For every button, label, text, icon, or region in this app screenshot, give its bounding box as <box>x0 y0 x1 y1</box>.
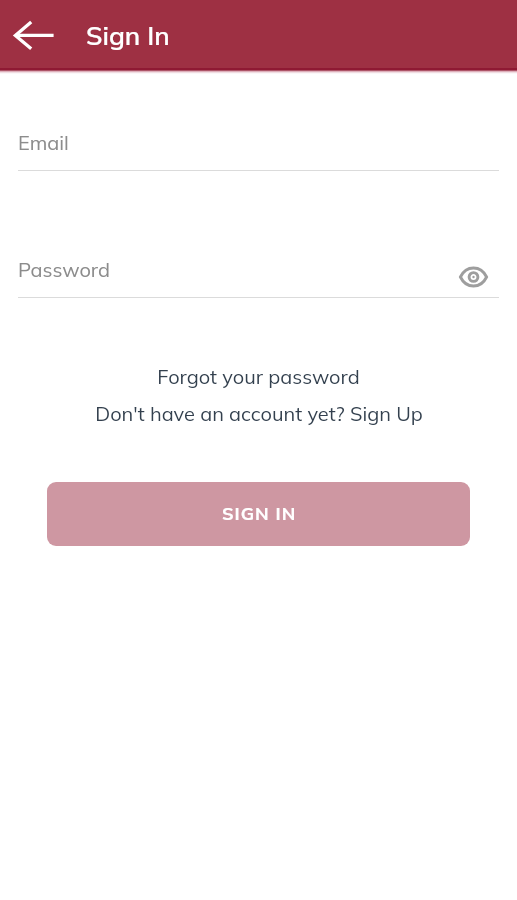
staticText: Forgot your password <box>157 364 360 389</box>
staticText: SIGN IN <box>222 502 297 525</box>
staticText: Don't have an account yet? Sign Up <box>95 401 423 426</box>
button[interactable]: SIGN IN <box>47 482 470 546</box>
button[interactable]: Show password <box>457 261 490 292</box>
staticText: Sign In <box>86 19 170 52</box>
staticText: Password <box>18 257 110 282</box>
staticText: Email <box>18 130 69 155</box>
button[interactable]: Back <box>0 0 69 69</box>
button[interactable]: Forgot your password <box>0 363 517 389</box>
button[interactable]: Don't have an account yet? Sign Up <box>0 400 517 426</box>
